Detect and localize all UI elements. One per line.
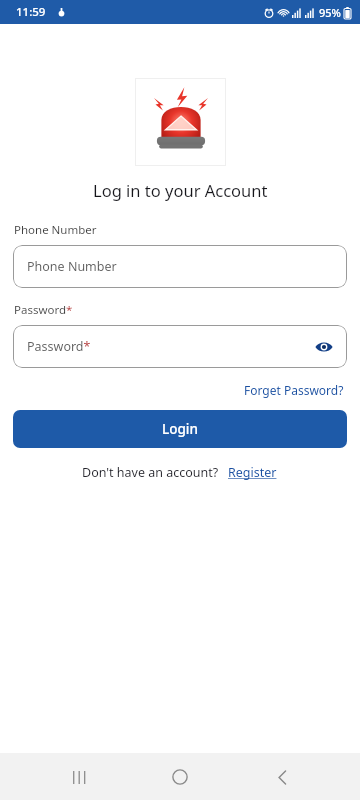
button[interactable]: Home: [157, 754, 203, 800]
staticText: Password*: [27, 338, 91, 355]
button[interactable]: Register: [227, 462, 278, 483]
staticText: Register: [228, 464, 277, 481]
staticText: Forget Password?: [244, 382, 344, 398]
button[interactable]: Password*: [13, 325, 347, 368]
button[interactable]: Show password: [311, 334, 337, 360]
staticText: Don't have an account?: [82, 464, 219, 481]
staticText: Phone Number: [14, 222, 97, 238]
button[interactable]: Back: [259, 754, 305, 800]
staticText: 95%: [319, 5, 341, 20]
staticText: Password*: [14, 302, 73, 318]
staticText: Log in to your Account: [93, 179, 268, 201]
staticText: Login: [162, 420, 198, 438]
staticText: 11:59: [16, 4, 46, 20]
button[interactable]: Phone Number: [13, 245, 347, 288]
staticText: Phone Number: [27, 258, 117, 275]
button[interactable]: Login: [13, 410, 347, 448]
button[interactable]: Recents: [56, 754, 102, 800]
button[interactable]: Forget Password?: [242, 380, 346, 400]
